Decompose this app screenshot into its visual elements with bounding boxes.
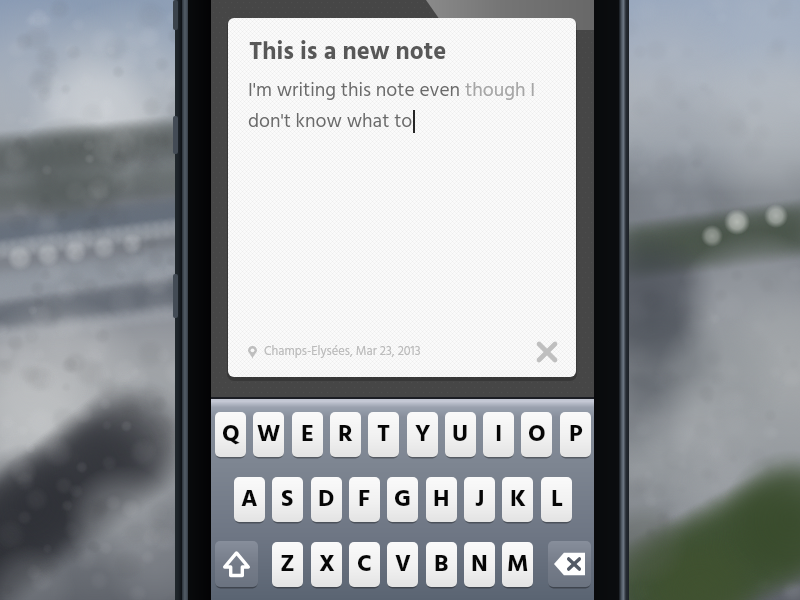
button[interactable]: G bbox=[387, 477, 418, 522]
staticText: Z bbox=[280, 546, 295, 584]
staticText: R bbox=[338, 416, 353, 454]
button[interactable]: L bbox=[541, 477, 572, 522]
button[interactable]: Backspace bbox=[548, 541, 591, 587]
button[interactable]: S bbox=[272, 477, 303, 522]
button[interactable]: Y bbox=[407, 412, 438, 457]
staticText: I bbox=[495, 416, 503, 454]
button[interactable]: P bbox=[560, 412, 591, 457]
button[interactable]: O bbox=[521, 412, 552, 457]
button[interactable]: C bbox=[349, 542, 380, 587]
button[interactable]: U bbox=[445, 412, 476, 457]
button[interactable]: Q bbox=[215, 412, 246, 457]
staticText: E bbox=[301, 416, 315, 454]
button[interactable]: N bbox=[464, 542, 495, 587]
button[interactable]: K bbox=[502, 477, 533, 522]
staticText: L bbox=[551, 481, 563, 519]
staticText: K bbox=[510, 481, 526, 519]
staticText: Q bbox=[222, 416, 240, 454]
staticText: P bbox=[569, 416, 583, 454]
staticText: I'm writing this note even bbox=[248, 75, 465, 106]
button[interactable]: X bbox=[311, 542, 342, 587]
button[interactable]: F bbox=[349, 477, 380, 522]
staticText: O bbox=[528, 416, 546, 454]
staticText: J bbox=[475, 481, 485, 519]
staticText: U bbox=[452, 416, 469, 454]
button[interactable]: R bbox=[330, 412, 361, 457]
button[interactable]: Z bbox=[272, 542, 303, 587]
button[interactable]: E bbox=[292, 412, 323, 457]
button[interactable]: V bbox=[387, 542, 418, 587]
staticText: T bbox=[377, 416, 391, 454]
button[interactable]: A bbox=[234, 477, 265, 522]
staticText: M bbox=[507, 546, 529, 584]
button[interactable]: M bbox=[502, 542, 533, 587]
staticText: though I bbox=[465, 75, 536, 106]
staticText: C bbox=[357, 546, 372, 584]
button[interactable]: I bbox=[483, 412, 514, 457]
button[interactable]: W bbox=[253, 412, 284, 457]
button[interactable]: Shift bbox=[215, 541, 258, 587]
staticText: don't know what to bbox=[248, 106, 413, 137]
staticText: B bbox=[434, 546, 449, 584]
button[interactable]: Close note bbox=[535, 340, 559, 364]
button[interactable]: D bbox=[311, 477, 342, 522]
staticText: D bbox=[318, 481, 335, 519]
staticText: S bbox=[281, 481, 294, 519]
button[interactable]: T bbox=[368, 412, 399, 457]
button[interactable]: J bbox=[464, 477, 495, 522]
staticText: V bbox=[395, 546, 411, 584]
staticText: X bbox=[319, 546, 335, 584]
button[interactable]: B bbox=[426, 542, 457, 587]
button[interactable]: H bbox=[426, 477, 457, 522]
staticText: G bbox=[394, 481, 411, 519]
staticText: H bbox=[433, 481, 450, 519]
staticText: W bbox=[257, 416, 281, 454]
staticText: Champs-Elysées, Mar 23, 2013 bbox=[264, 342, 421, 362]
staticText: F bbox=[358, 481, 371, 519]
staticText: This is a new note bbox=[249, 33, 447, 72]
staticText: A bbox=[241, 481, 258, 519]
staticText: N bbox=[471, 546, 488, 584]
staticText: Y bbox=[415, 416, 431, 454]
